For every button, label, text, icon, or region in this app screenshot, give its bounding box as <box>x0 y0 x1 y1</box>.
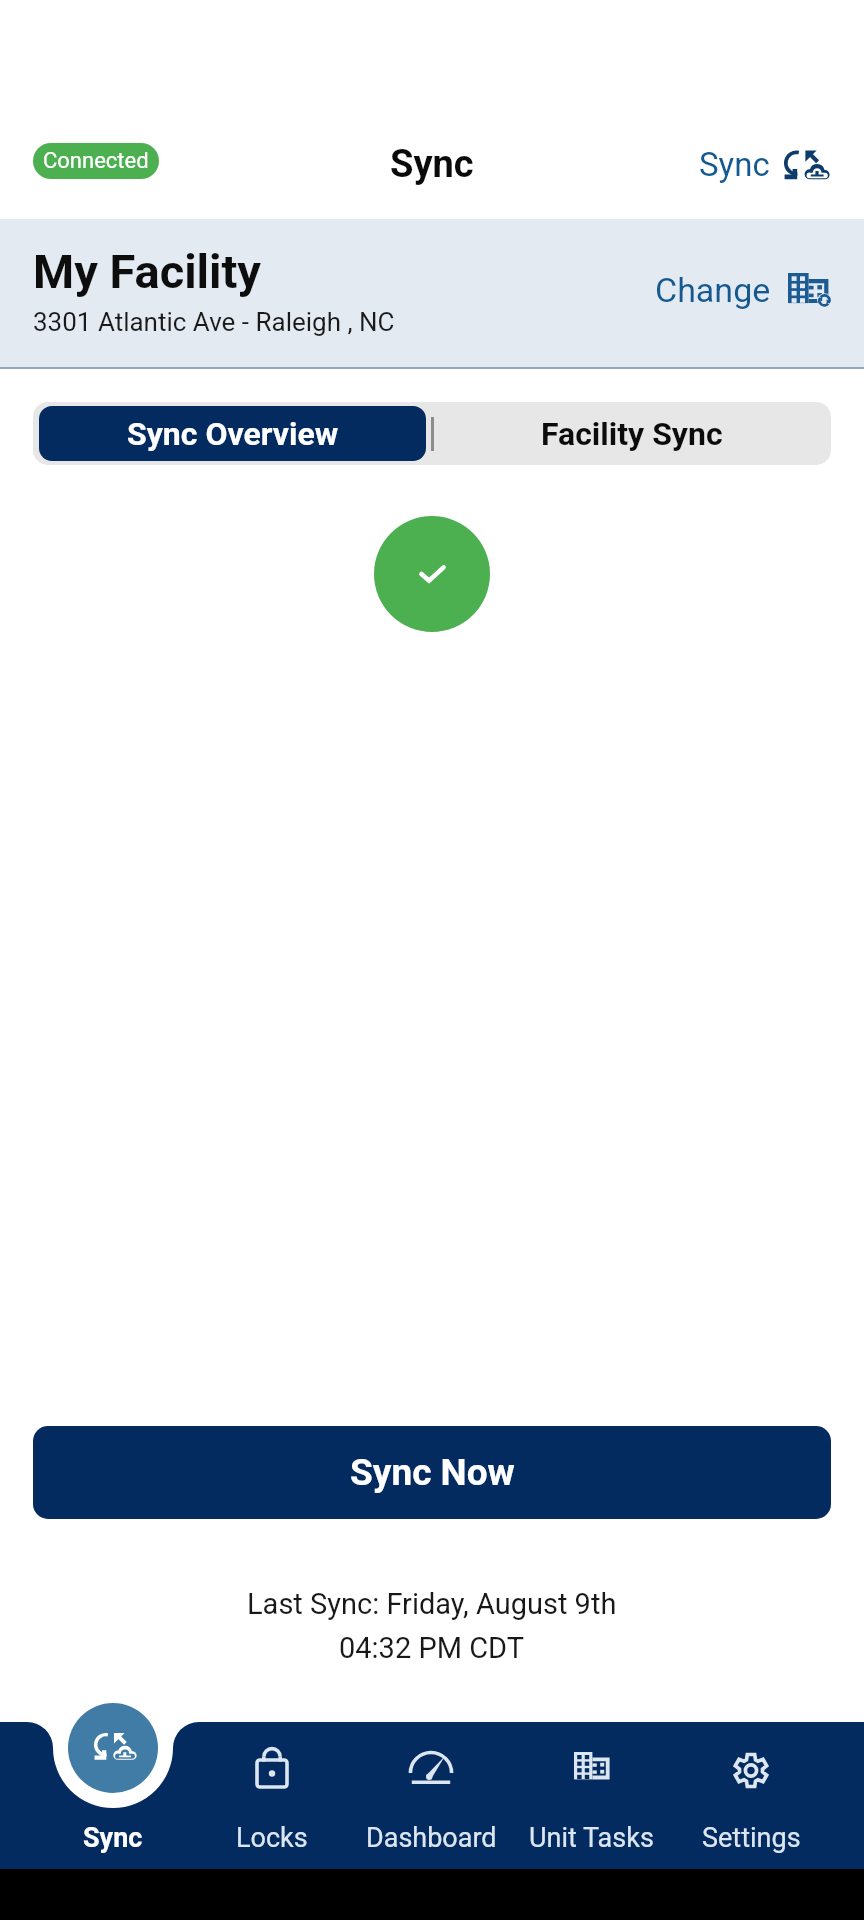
staticText: Sync <box>699 145 770 184</box>
staticText: Facility Sync <box>541 415 723 453</box>
staticText: Locks <box>236 1822 308 1854</box>
button[interactable]: Sync Now <box>33 1426 831 1519</box>
staticText: Change <box>655 270 771 310</box>
staticText: Last Sync: Friday, August 9th <box>247 1587 617 1621</box>
staticText: Settings <box>702 1822 801 1854</box>
button[interactable]: Facility Sync <box>432 402 831 465</box>
staticText: Dashboard <box>366 1822 497 1854</box>
button[interactable]: Locks <box>192 1722 351 1869</box>
staticText: 3301 Atlantic Ave - Raleigh , NC <box>33 307 395 337</box>
button[interactable]: Connected <box>33 143 159 179</box>
staticText: Sync Overview <box>127 415 339 453</box>
button[interactable]: Sync Overview <box>39 406 426 461</box>
staticText: Sync <box>83 1822 143 1854</box>
staticText: My Facility <box>33 244 262 299</box>
staticText: Unit Tasks <box>529 1822 654 1854</box>
staticText: Sync Now <box>350 1451 515 1494</box>
button[interactable]: Sync <box>33 1722 192 1869</box>
button[interactable]: Sync <box>699 145 830 184</box>
button[interactable]: Sync <box>68 1703 158 1793</box>
staticText: Connected <box>43 148 149 174</box>
button[interactable]: Dashboard <box>351 1722 511 1869</box>
button[interactable]: Settings <box>671 1722 831 1869</box>
staticText: 04:32 PM CDT <box>339 1631 525 1665</box>
button[interactable]: Unit Tasks <box>511 1722 671 1869</box>
staticText: Sync <box>390 142 474 187</box>
button[interactable]: Change <box>655 270 831 310</box>
